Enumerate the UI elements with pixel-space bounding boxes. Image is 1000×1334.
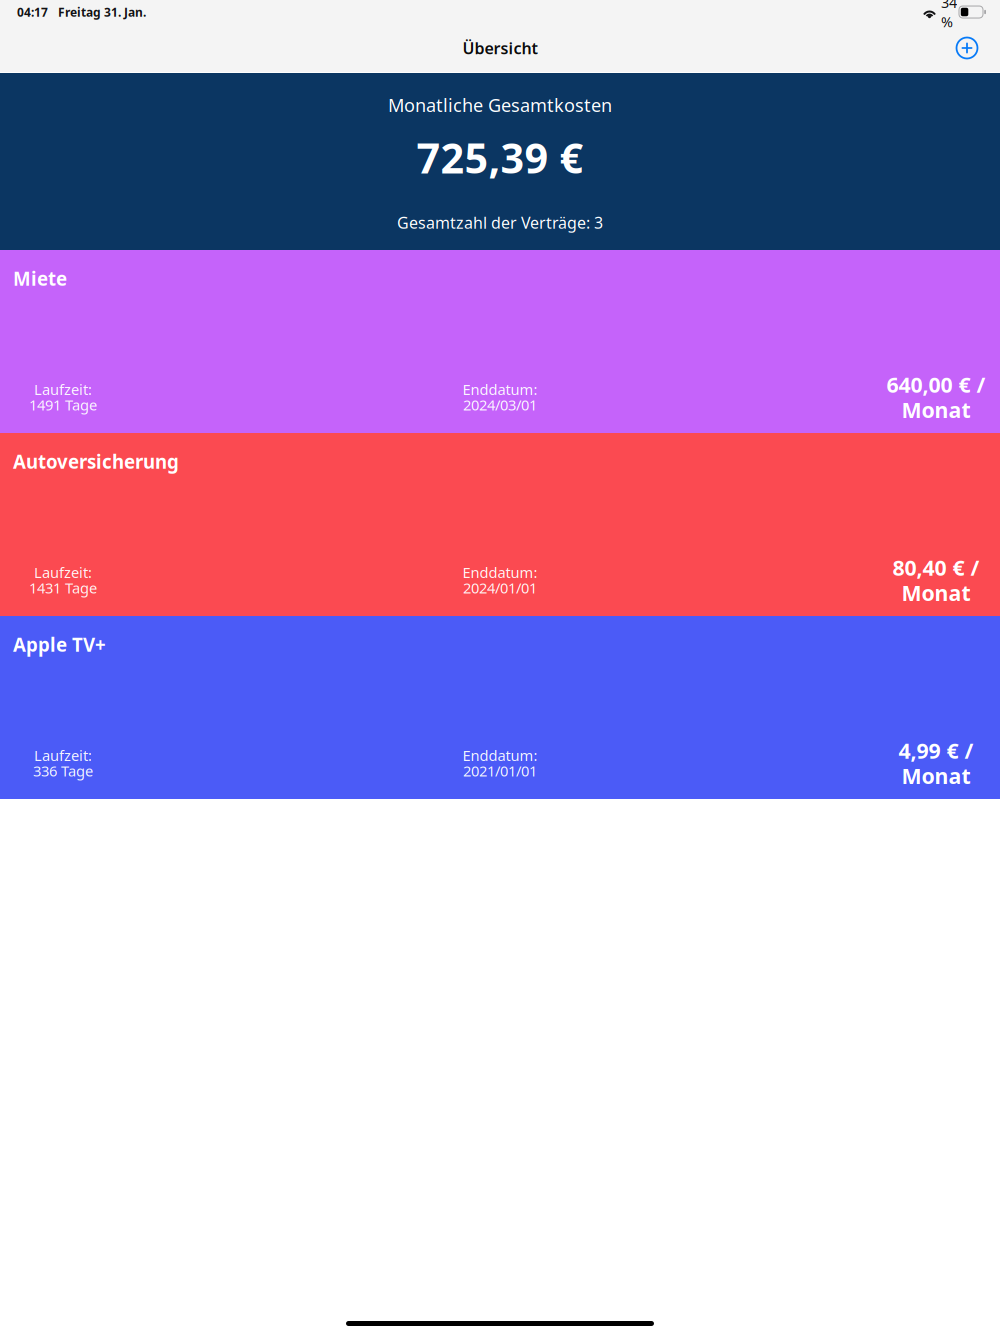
staticText: Monat xyxy=(901,579,970,607)
staticText: 1491 Tage xyxy=(29,395,97,415)
button[interactable]: Autoversicherung xyxy=(0,433,1000,616)
staticText: Apple TV+ xyxy=(13,632,106,657)
staticText: Miete xyxy=(13,266,67,291)
staticText: 34 % xyxy=(941,0,957,31)
staticText: 2024/03/01 xyxy=(463,395,537,415)
button[interactable]: Vertrag hinzufügen xyxy=(945,26,989,70)
staticText: 336 Tage xyxy=(33,761,93,781)
staticText: Laufzeit: xyxy=(34,563,92,582)
staticText: 4,99 € / xyxy=(898,736,973,765)
staticText: Monatliche Gesamtkosten xyxy=(388,93,612,117)
staticText: Autoversicherung xyxy=(13,449,179,474)
staticText: 2021/01/01 xyxy=(463,761,537,781)
staticText: Laufzeit: xyxy=(34,746,92,765)
staticText: Gesamtzahl der Verträge: 3 xyxy=(397,212,603,233)
staticText: Freitag 31. Jan. xyxy=(58,4,146,20)
staticText: Enddatum: xyxy=(462,380,537,399)
button[interactable]: Apple TV+ xyxy=(0,616,1000,799)
staticText: Übersicht xyxy=(462,37,537,59)
button[interactable]: Miete xyxy=(0,250,1000,433)
staticText: 725,39 € xyxy=(416,130,583,185)
staticText: Monat xyxy=(901,396,970,424)
staticText: 04:17 xyxy=(17,4,48,20)
staticText: 80,40 € / xyxy=(892,553,979,582)
staticText: Monat xyxy=(901,762,970,790)
staticText: 2024/01/01 xyxy=(463,578,537,598)
staticText: Laufzeit: xyxy=(34,380,92,399)
staticText: Enddatum: xyxy=(462,563,537,582)
staticText: 640,00 € / xyxy=(886,370,985,399)
staticText: Enddatum: xyxy=(462,746,537,765)
staticText: 1431 Tage xyxy=(29,578,97,598)
